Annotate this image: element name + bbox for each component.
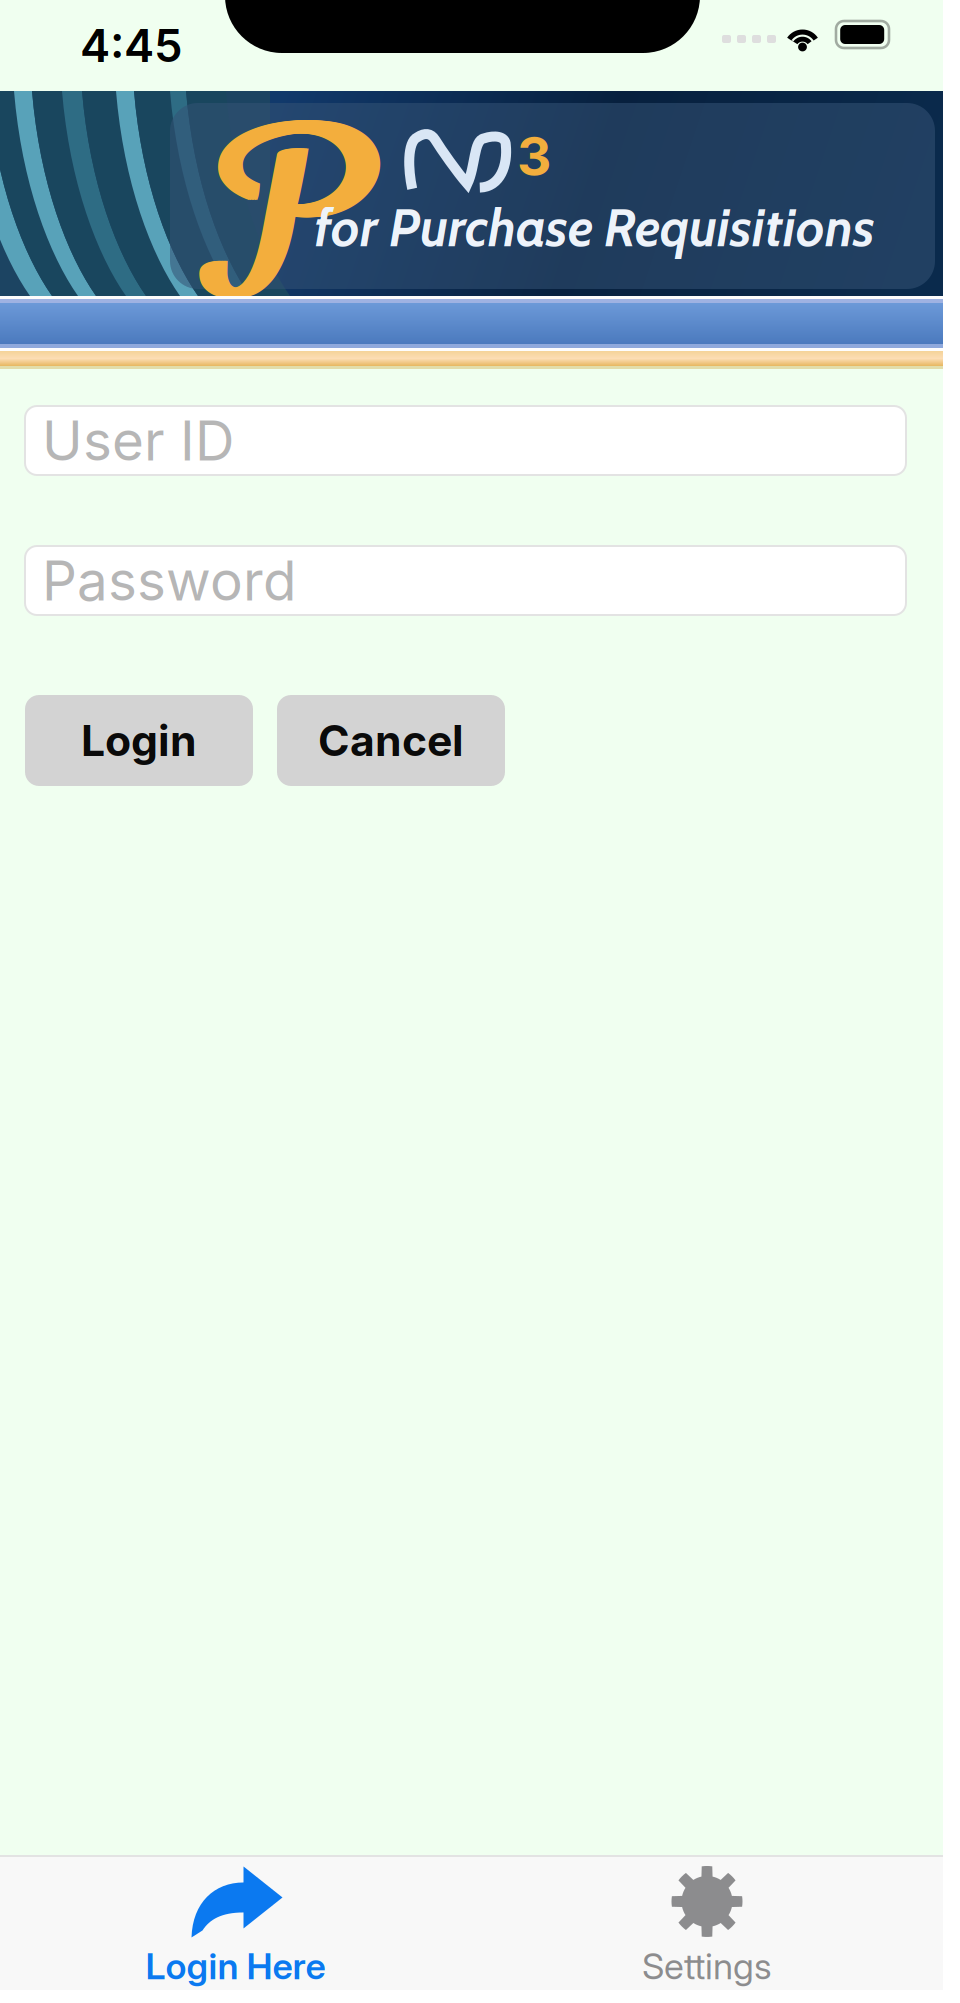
staticText: P — [221, 61, 358, 362]
button[interactable]: Login Here — [0, 1857, 471, 1990]
button[interactable]: Cancel — [277, 695, 505, 786]
staticText: P — [219, 61, 356, 362]
staticText: Login Here — [145, 1944, 325, 1988]
button[interactable]: Settings — [471, 1857, 943, 1990]
staticText: P — [216, 61, 353, 362]
staticText: P — [213, 61, 350, 362]
staticText: Cancel — [318, 715, 464, 766]
staticText: 3 — [517, 124, 551, 188]
staticText: 4:45 — [80, 18, 183, 73]
staticText: P — [215, 61, 352, 362]
staticText: User ID — [42, 407, 234, 473]
staticText: Login — [81, 715, 197, 766]
staticText: for Purchase Requisitions — [314, 196, 875, 259]
staticText: Settings — [642, 1944, 772, 1988]
staticText: P — [218, 61, 355, 362]
staticText: Password — [42, 547, 296, 613]
button[interactable]: Login — [25, 695, 253, 786]
